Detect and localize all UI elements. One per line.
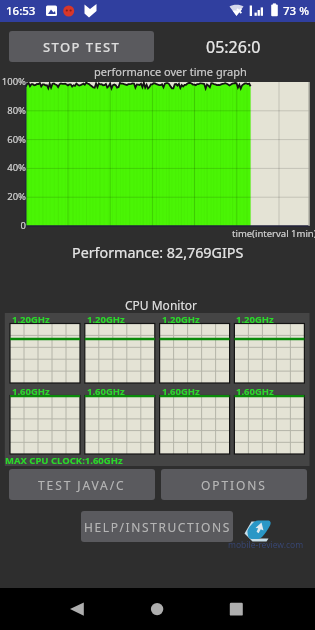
button[interactable]: Home bbox=[125, 588, 189, 630]
staticText: 80% bbox=[7, 104, 26, 117]
staticText: 1.20GHz bbox=[87, 313, 125, 326]
button[interactable]: TEST JAVA/C bbox=[9, 469, 155, 500]
staticText: 1.60GHz bbox=[87, 385, 125, 398]
staticText: 0 bbox=[20, 219, 26, 232]
button[interactable]: STOP TEST bbox=[9, 31, 154, 62]
staticText: Performance: 82,769GIPS bbox=[72, 243, 244, 262]
staticText: 40% bbox=[7, 161, 26, 174]
staticText: 1.20GHz bbox=[236, 313, 274, 326]
other: mobile-review.com logo bbox=[244, 519, 273, 541]
staticText: performance over time graph bbox=[94, 64, 247, 79]
staticText: 1.60GHz bbox=[12, 385, 50, 398]
staticText: 73 % bbox=[283, 3, 309, 19]
staticText: 16:53 bbox=[6, 3, 36, 19]
staticText: 60% bbox=[7, 133, 26, 146]
staticText: HELP/INSTRUCTIONS bbox=[84, 519, 231, 535]
staticText: 20% bbox=[7, 190, 26, 203]
staticText: MAX CPU CLOCK:1.60GHz bbox=[5, 454, 123, 467]
button[interactable]: OPTIONS bbox=[161, 469, 307, 500]
staticText: TEST JAVA/C bbox=[38, 477, 126, 493]
staticText: 1.20GHz bbox=[162, 313, 200, 326]
staticText: OPTIONS bbox=[201, 477, 267, 493]
staticText: mobile-review.com bbox=[228, 539, 304, 551]
staticText: 1.60GHz bbox=[236, 385, 274, 398]
staticText: 05:26:0 bbox=[206, 36, 261, 58]
staticText: 100% bbox=[1, 75, 26, 88]
button[interactable]: Recent apps bbox=[204, 588, 268, 630]
staticText: CPU Monitor bbox=[125, 297, 197, 313]
staticText: 1.60GHz bbox=[162, 385, 200, 398]
staticText: 1.20GHz bbox=[12, 313, 50, 326]
staticText: STOP TEST bbox=[43, 38, 121, 56]
button[interactable]: Back bbox=[45, 588, 109, 630]
staticText: time(interval 1min) bbox=[232, 227, 315, 240]
button[interactable]: HELP/INSTRUCTIONS bbox=[81, 511, 233, 542]
